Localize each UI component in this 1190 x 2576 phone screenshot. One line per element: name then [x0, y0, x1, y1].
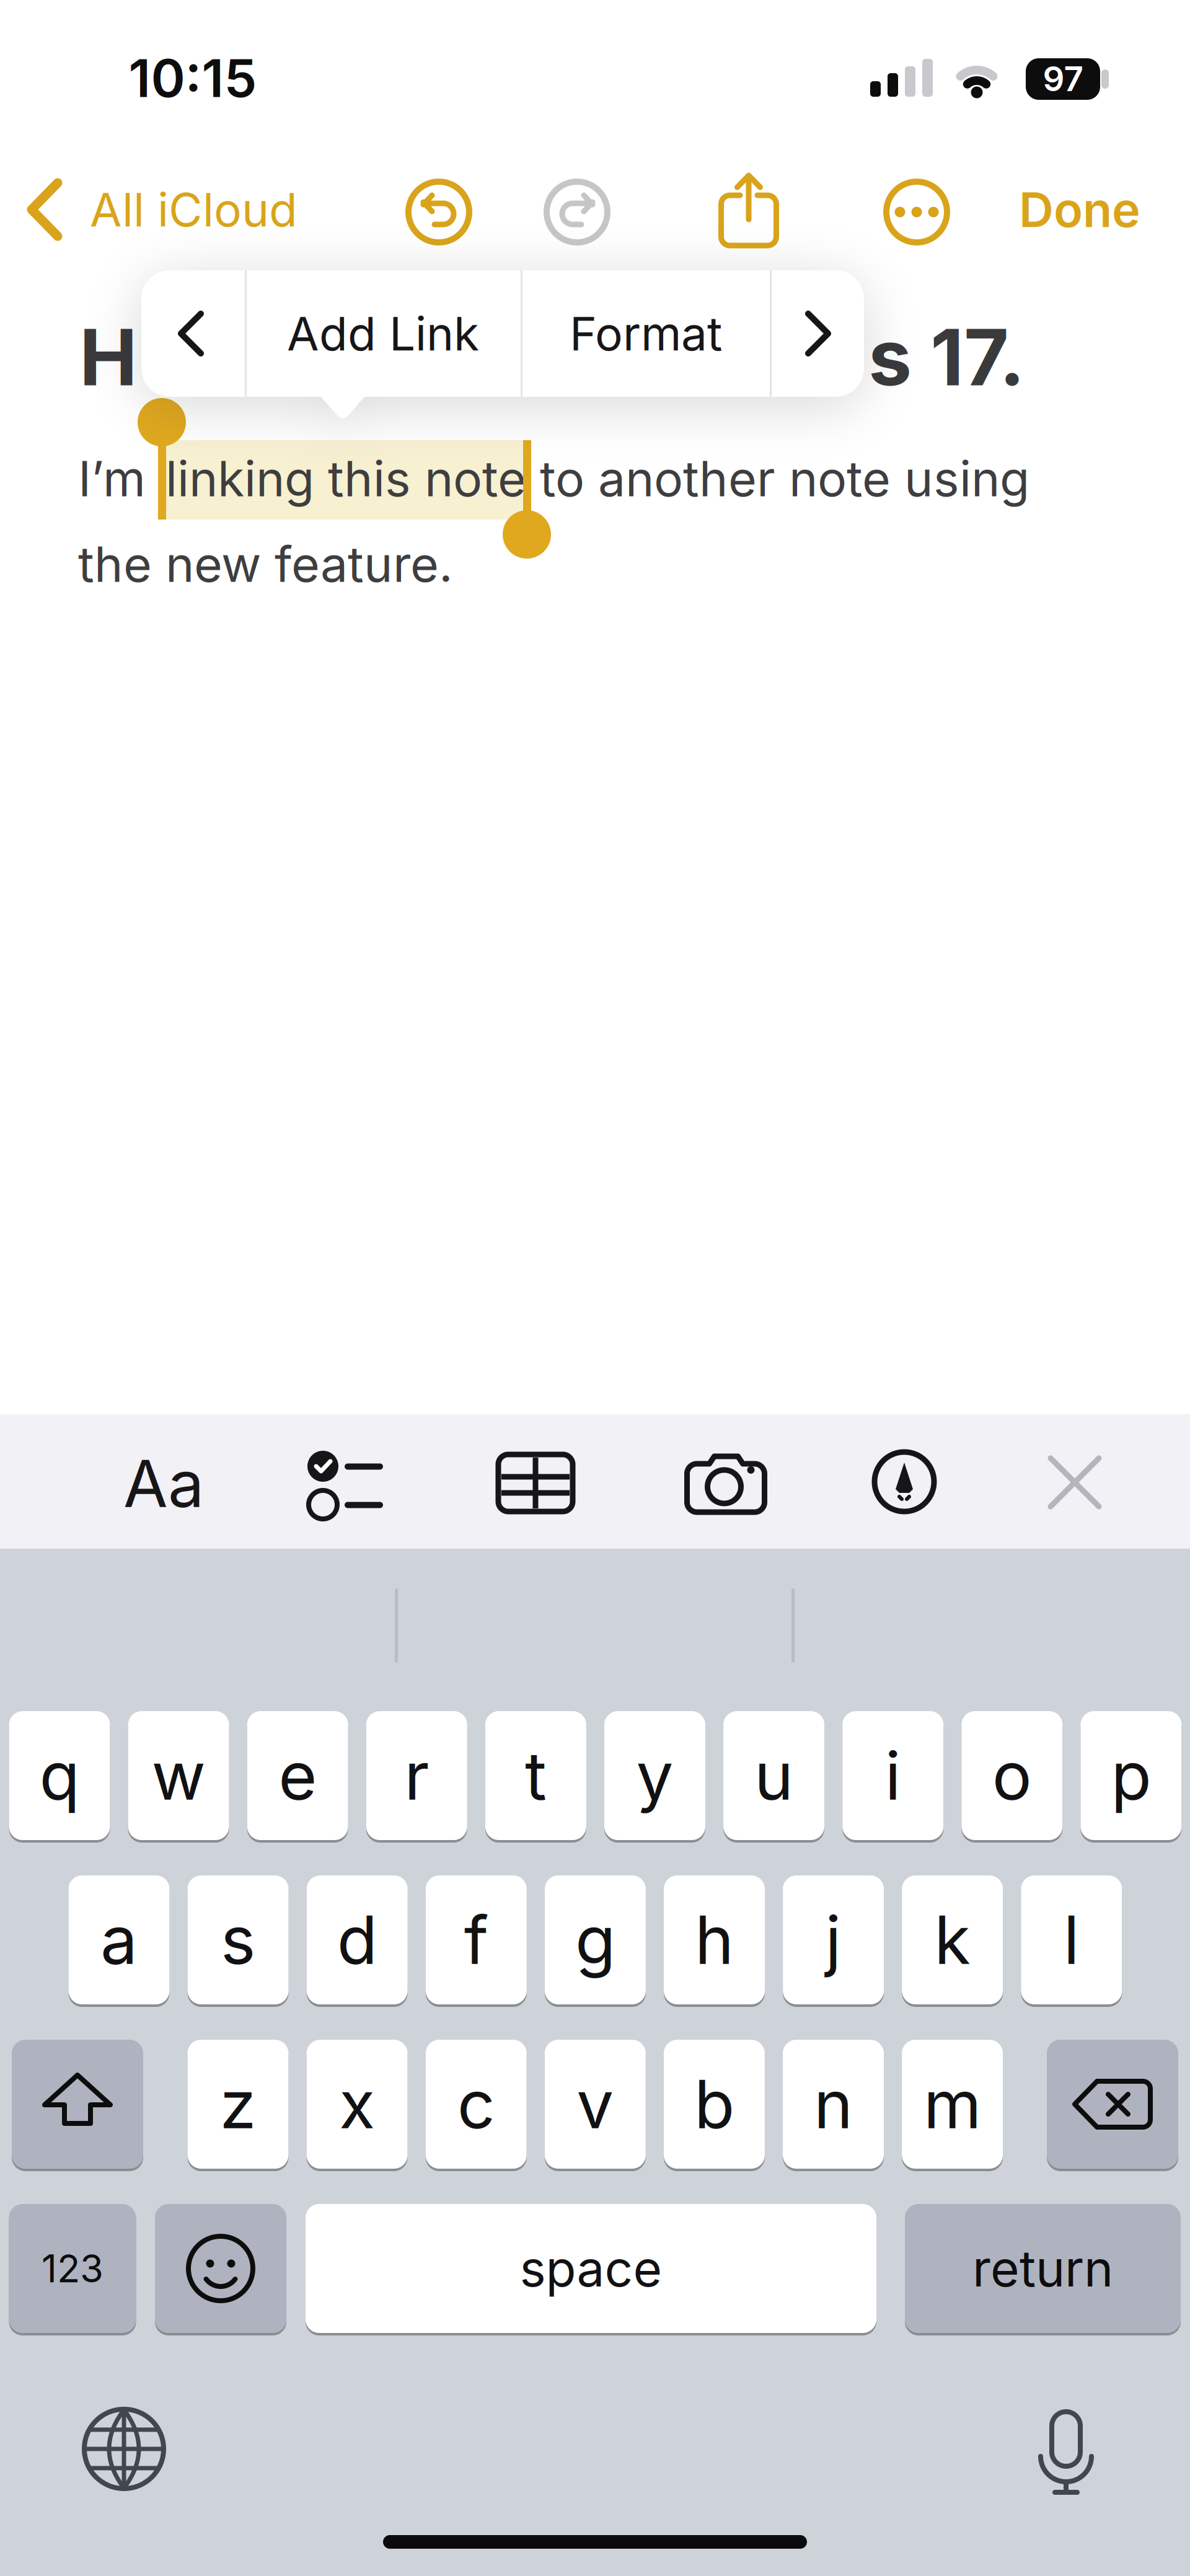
- staticText: Add Link: [287, 306, 479, 361]
- staticText: Done: [1019, 181, 1140, 238]
- button[interactable]: r: [366, 1710, 467, 1841]
- staticText: the new feature.: [78, 535, 453, 593]
- staticText: f: [464, 1901, 488, 1979]
- staticText: linking this note: [165, 450, 526, 507]
- button[interactable]: Table: [498, 1454, 573, 1512]
- button[interactable]: Next: [806, 311, 831, 356]
- staticText: b: [694, 2065, 734, 2143]
- button[interactable]: Share: [719, 172, 779, 248]
- button[interactable]: Previous: [178, 311, 203, 356]
- staticText: e: [278, 1737, 317, 1815]
- button[interactable]: u: [723, 1710, 824, 1841]
- button[interactable]: n: [783, 2038, 884, 2170]
- button[interactable]: a: [68, 1874, 170, 2006]
- button[interactable]: Return: [905, 2203, 1181, 2334]
- staticText: c: [457, 2065, 495, 2143]
- button[interactable]: f: [426, 1874, 527, 2006]
- staticText: n: [814, 2065, 853, 2143]
- button[interactable]: j: [783, 1874, 884, 2006]
- button[interactable]: Markup: [875, 1452, 934, 1512]
- staticText: 97: [1043, 59, 1083, 99]
- staticText: u: [754, 1737, 793, 1815]
- staticText: to another note using: [540, 450, 1029, 507]
- staticText: x: [339, 2065, 375, 2143]
- button[interactable]: k: [902, 1874, 1003, 2006]
- button[interactable]: x: [307, 2038, 408, 2170]
- staticText: z: [220, 2065, 256, 2143]
- button[interactable]: v: [545, 2038, 646, 2170]
- button[interactable]: Dismiss keyboard: [1047, 1455, 1102, 1510]
- staticText: t: [525, 1737, 547, 1815]
- button[interactable]: Add Link: [247, 272, 519, 396]
- staticText: a: [100, 1901, 138, 1979]
- button[interactable]: t: [485, 1710, 586, 1841]
- button[interactable]: g: [545, 1874, 646, 2006]
- staticText: i: [885, 1737, 901, 1815]
- button[interactable]: b: [664, 2038, 765, 2170]
- staticText: v: [577, 2065, 614, 2143]
- button[interactable]: s: [188, 1874, 289, 2006]
- button[interactable]: Shift: [12, 2038, 143, 2170]
- staticText: m: [924, 2065, 981, 2143]
- button[interactable]: Format: [525, 272, 767, 396]
- staticText: 10:15: [129, 47, 257, 109]
- button[interactable]: All iCloud: [0, 181, 1190, 238]
- button[interactable]: Undo: [405, 179, 472, 246]
- staticText: o: [992, 1737, 1032, 1815]
- staticText: space: [520, 2239, 662, 2298]
- staticText: return: [972, 2239, 1113, 2298]
- button[interactable]: e: [247, 1710, 348, 1841]
- button[interactable]: Delete: [1047, 2038, 1178, 2170]
- button[interactable]: Dictate: [1038, 2410, 1094, 2494]
- button[interactable]: p: [1081, 1710, 1182, 1841]
- staticText: d: [337, 1901, 377, 1979]
- button[interactable]: l: [1021, 1874, 1122, 2006]
- button[interactable]: y: [604, 1710, 705, 1841]
- button[interactable]: z: [187, 2038, 289, 2170]
- staticText: l: [1063, 1901, 1080, 1979]
- button[interactable]: More: [884, 180, 949, 244]
- staticText: w: [152, 1737, 206, 1815]
- staticText: p: [1111, 1737, 1151, 1815]
- button[interactable]: i: [842, 1710, 943, 1841]
- button[interactable]: o: [961, 1710, 1063, 1841]
- staticText: s: [221, 1901, 255, 1979]
- button[interactable]: q: [9, 1710, 110, 1841]
- staticText: 123: [42, 2246, 104, 2291]
- button[interactable]: Next keyboard: [84, 2409, 164, 2489]
- button[interactable]: Emoji: [155, 2203, 286, 2334]
- staticText: Format: [570, 306, 722, 361]
- staticText: r: [404, 1737, 429, 1815]
- button[interactable]: w: [128, 1710, 229, 1841]
- button[interactable]: h: [664, 1874, 765, 2006]
- staticText: y: [636, 1737, 673, 1815]
- staticText: g: [575, 1901, 615, 1979]
- staticText: k: [934, 1901, 971, 1979]
- staticText: H: [79, 311, 138, 403]
- staticText: j: [825, 1901, 841, 1979]
- staticText: I’m: [78, 450, 146, 507]
- staticText: h: [695, 1901, 734, 1979]
- button[interactable]: Numbers: [9, 2203, 136, 2334]
- button[interactable]: Redo: [544, 179, 610, 246]
- staticText: s 17.: [868, 311, 1025, 403]
- button[interactable]: c: [426, 2038, 527, 2170]
- staticText: q: [39, 1737, 80, 1815]
- staticText: All iCloud: [90, 182, 297, 237]
- button[interactable]: Done: [0, 181, 1190, 238]
- button[interactable]: Format: [102, 1434, 226, 1533]
- staticText: Aa: [123, 1446, 204, 1522]
- button[interactable]: m: [902, 2038, 1003, 2170]
- button[interactable]: Checklist: [307, 1450, 384, 1526]
- button[interactable]: d: [307, 1874, 408, 2006]
- button[interactable]: Camera: [687, 1451, 765, 1512]
- button[interactable]: space: [306, 2203, 876, 2334]
